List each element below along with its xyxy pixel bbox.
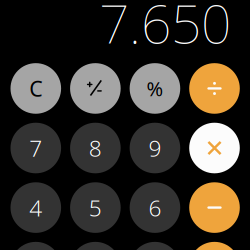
button[interactable]: Multiply [189, 123, 240, 173]
button[interactable]: Plus Minus [70, 63, 121, 114]
staticText: 8 [89, 133, 102, 163]
staticText: 7.650 [99, 0, 231, 58]
button[interactable]: 6 [130, 182, 180, 233]
staticText: 6 [148, 192, 161, 223]
button[interactable]: 5 [70, 182, 121, 233]
button[interactable]: C [10, 63, 61, 114]
staticText: 7 [29, 133, 42, 163]
button[interactable]: 9 [130, 123, 180, 173]
button[interactable]: Subtract [189, 182, 240, 233]
button[interactable]: Add [189, 242, 240, 250]
staticText: 9 [148, 133, 161, 163]
button[interactable]: 4 [10, 182, 61, 233]
staticText: 4 [29, 192, 42, 223]
button[interactable]: 1 [10, 242, 61, 250]
button[interactable]: Divide [189, 63, 240, 114]
button[interactable]: % [130, 63, 180, 114]
staticText: % [146, 75, 163, 102]
button[interactable]: 2 [70, 242, 121, 250]
button[interactable]: 3 [130, 242, 180, 250]
button[interactable]: 7 [10, 123, 61, 173]
staticText: C [29, 74, 42, 103]
staticText: 5 [89, 192, 102, 223]
button[interactable]: 8 [70, 123, 121, 173]
